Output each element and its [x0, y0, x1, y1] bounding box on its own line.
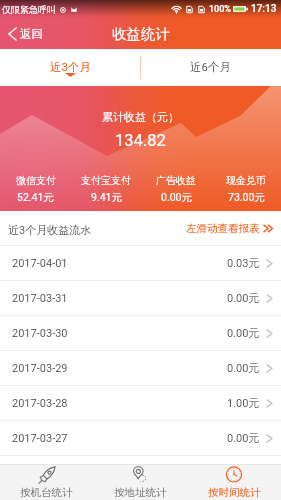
staticText: 52.41元: [17, 191, 54, 204]
staticText: 0.00元: [227, 291, 260, 305]
staticText: 现金兑币: [226, 174, 266, 187]
staticText: 0.00元: [161, 191, 192, 204]
staticText: 0.00元: [227, 431, 260, 445]
staticText: 9.41元: [91, 191, 122, 204]
staticText: 0.03元: [227, 256, 260, 270]
button[interactable]: 按地址统计: [93, 465, 187, 500]
staticText: 100%: [209, 4, 231, 15]
staticText: 累计收益（元）: [102, 110, 179, 124]
button[interactable]: 2017-03-27: [0, 421, 281, 455]
staticText: 返回: [20, 27, 43, 41]
button[interactable]: 近3个月: [0, 49, 140, 86]
staticText: 按地址统计: [114, 486, 167, 499]
staticText: 2017-03-29: [12, 362, 68, 375]
button[interactable]: 按机台统计: [0, 465, 93, 500]
staticText: 广告收益: [156, 174, 196, 187]
staticText: 近6个月: [190, 60, 231, 74]
staticText: 2017-04-01: [12, 257, 68, 270]
button[interactable]: 2017-03-30: [0, 316, 281, 350]
button[interactable]: 2017-03-28: [0, 386, 281, 420]
staticText: 左滑动查看报表: [186, 222, 260, 235]
staticText: 0.00元: [227, 326, 260, 340]
staticText: 收益统计: [112, 25, 170, 43]
staticText: 134.82: [115, 131, 166, 150]
staticText: 支付宝支付: [81, 174, 131, 187]
staticText: 微信支付: [16, 174, 56, 187]
staticText: 近3个月: [50, 60, 91, 74]
button[interactable]: 2017-03-29: [0, 351, 281, 385]
staticText: 2017-03-31: [12, 292, 68, 305]
staticText: 17:13: [251, 3, 277, 15]
staticText: 2017-03-28: [12, 397, 68, 410]
staticText: 仅限紧急呼叫: [2, 4, 56, 15]
button[interactable]: 左滑动查看报表: [180, 216, 281, 241]
staticText: 2017-03-27: [12, 432, 68, 445]
button[interactable]: 2017-04-01: [0, 246, 281, 280]
button[interactable]: 按时间统计: [187, 465, 281, 500]
staticText: 按机台统计: [20, 486, 73, 499]
button[interactable]: 2017-03-31: [0, 281, 281, 315]
staticText: 0.00元: [227, 361, 260, 375]
button[interactable]: 近6个月: [140, 49, 281, 86]
button[interactable]: 返回: [0, 22, 51, 46]
staticText: 2017-03-30: [12, 327, 68, 340]
staticText: 按时间统计: [208, 486, 261, 499]
staticText: 73.00元: [228, 191, 265, 204]
staticText: 近3个月收益流水: [8, 223, 92, 237]
staticText: 1.00元: [227, 396, 260, 410]
